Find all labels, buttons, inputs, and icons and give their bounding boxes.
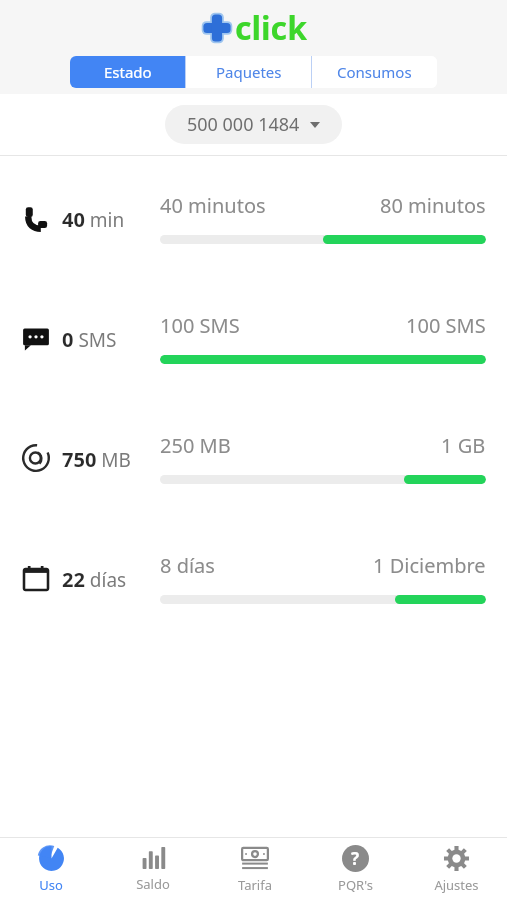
staticText: 750 MB: [62, 446, 131, 473]
button[interactable]: Vigencia: [0, 538, 507, 658]
button[interactable]: Consumos: [312, 56, 437, 88]
staticText: PQR's: [338, 876, 373, 894]
other: SMS: [21, 323, 51, 353]
button[interactable]: ?: [305, 838, 406, 900]
staticText: Paquetes: [216, 62, 282, 82]
staticText: 40 minutos: [160, 192, 266, 219]
staticText: Saldo: [136, 875, 170, 893]
other: Vigencia: [21, 563, 51, 593]
staticText: Tarifa: [238, 876, 272, 894]
staticText: Uso: [39, 876, 63, 894]
staticText: 1 GB: [441, 432, 486, 459]
staticText: 8 días: [160, 552, 215, 579]
button[interactable]: Saldo: [102, 838, 204, 900]
staticText: 1 Diciembre: [373, 552, 486, 579]
staticText: 250 MB: [160, 432, 231, 459]
button[interactable]: SMS: [0, 298, 507, 418]
button[interactable]: Datos: [0, 418, 507, 538]
staticText: 80 minutos: [380, 192, 486, 219]
staticText: ?: [351, 847, 360, 870]
staticText: Estado: [104, 62, 152, 82]
staticText: 500 000 1484: [187, 112, 300, 137]
staticText: click: [235, 6, 307, 50]
staticText: Ajustes: [434, 876, 479, 894]
button[interactable]: 500 000 1484: [165, 105, 342, 144]
button[interactable]: Uso: [0, 838, 102, 900]
staticText: 22 días: [62, 566, 127, 593]
other: Datos: [20, 442, 52, 474]
button[interactable]: Estado: [70, 56, 185, 88]
staticText: 0 SMS: [62, 326, 117, 353]
staticText: Consumos: [337, 62, 412, 82]
button[interactable]: Paquetes: [186, 56, 311, 88]
button[interactable]: Ajustes: [406, 838, 507, 900]
staticText: 100 SMS: [160, 312, 240, 339]
staticText: 100 SMS: [406, 312, 486, 339]
button[interactable]: Tarifa: [204, 838, 305, 900]
other: Minutos: [21, 203, 51, 233]
button[interactable]: Minutos: [0, 178, 507, 298]
staticText: 40 min: [62, 206, 125, 233]
